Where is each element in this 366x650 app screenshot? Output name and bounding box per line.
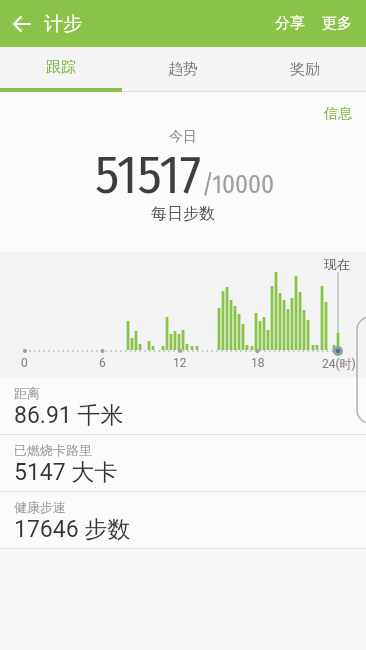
staticText: 健康步速 — [14, 499, 66, 515]
staticText: 86.91 千米 — [14, 401, 124, 430]
staticText: 0 — [21, 356, 28, 370]
staticText: 18 — [251, 356, 265, 370]
staticText: 51517 — [95, 143, 202, 207]
staticText: 分享 — [275, 14, 305, 33]
staticText: 每日步数 — [151, 204, 215, 224]
button[interactable]: 距离 — [0, 378, 366, 435]
button[interactable]: 已燃烧卡路里 — [0, 435, 366, 492]
staticText: 12 — [173, 356, 187, 370]
staticText: 计步 — [44, 12, 82, 36]
staticText: 6 — [99, 356, 106, 370]
staticText: /10000 — [202, 170, 275, 200]
staticText: 距离 — [14, 385, 40, 401]
button[interactable] — [0, 2, 44, 46]
button[interactable]: 信息 — [324, 92, 366, 123]
button[interactable]: 分享 — [265, 2, 313, 45]
button[interactable]: 健康步速 — [0, 492, 366, 549]
staticText: 现在 — [324, 256, 350, 272]
staticText: 24(时) — [322, 356, 356, 371]
staticText: 信息 — [324, 105, 352, 123]
staticText: 更多 — [322, 14, 352, 33]
button[interactable]: 趋势 — [122, 47, 244, 92]
staticText: 已燃烧卡路里 — [14, 442, 92, 458]
button[interactable]: 跟踪 — [0, 47, 122, 92]
staticText: 跟踪 — [46, 58, 76, 77]
staticText: 今日 — [169, 128, 197, 146]
staticText: 奖励 — [290, 60, 320, 79]
button[interactable]: 更多 — [313, 2, 366, 45]
button[interactable]: 奖励 — [244, 47, 366, 92]
staticText: 趋势 — [168, 60, 198, 79]
staticText: 17646 步数 — [14, 515, 131, 544]
staticText: 5147 大卡 — [14, 458, 118, 487]
